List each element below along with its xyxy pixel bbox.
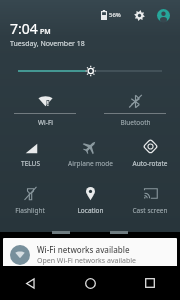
button[interactable]: Flashlight xyxy=(0,180,60,227)
staticText: PM xyxy=(40,27,51,37)
button[interactable]: Settings xyxy=(130,6,148,24)
button[interactable]: Back xyxy=(0,266,60,300)
staticText: Cast screen xyxy=(132,206,168,215)
button[interactable]: 7:04 xyxy=(10,19,85,49)
staticText: Open Wi-Fi networks available xyxy=(37,256,137,266)
staticText: Flashlight xyxy=(15,206,45,215)
button[interactable]: Wi-Fi networks available xyxy=(3,238,177,272)
button[interactable]: TELUS xyxy=(0,133,60,180)
button[interactable]: User profile xyxy=(154,6,172,24)
staticText: TELUS xyxy=(21,159,40,168)
button[interactable]: Recent apps xyxy=(120,266,180,300)
staticText: Tuesday, November 18 xyxy=(10,39,85,49)
staticText: 56% xyxy=(109,11,121,19)
staticText: Wi-Fi networks available xyxy=(37,244,130,255)
button[interactable]: Location xyxy=(60,180,120,227)
staticText: Bluetooth xyxy=(120,118,151,127)
button[interactable]: Brightness xyxy=(0,56,180,86)
staticText: Airplane mode xyxy=(68,159,113,168)
staticText: 7:04 xyxy=(10,19,38,38)
staticText: Location xyxy=(77,206,104,215)
button[interactable]: Auto-rotate xyxy=(120,133,180,180)
button[interactable]: Bluetooth xyxy=(90,88,180,133)
staticText: Auto-rotate xyxy=(132,159,168,168)
button[interactable]: Home xyxy=(60,266,120,300)
staticText: Wi-Fi xyxy=(38,118,53,127)
button[interactable]: Wi-Fi xyxy=(0,88,90,133)
button[interactable]: Airplane mode xyxy=(60,133,120,180)
button[interactable]: Cast screen xyxy=(120,180,180,227)
